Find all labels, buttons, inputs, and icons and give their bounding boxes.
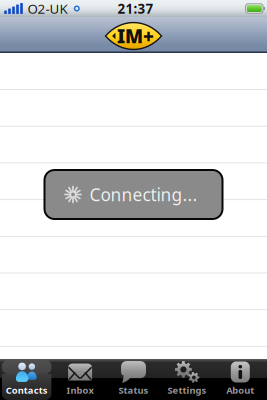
staticText: Connecting... xyxy=(89,183,197,206)
staticText: Status xyxy=(118,384,148,396)
staticText: Inbox xyxy=(67,384,94,396)
staticText: Contacts xyxy=(6,384,48,396)
button[interactable]: Status xyxy=(107,359,160,400)
staticText: 21:37 xyxy=(117,0,153,17)
button[interactable]: Settings xyxy=(160,359,214,400)
staticText: About xyxy=(226,384,254,396)
button[interactable]: Inbox xyxy=(53,359,107,400)
staticText: O2-UK xyxy=(27,0,67,17)
staticText: IM+ xyxy=(117,24,154,48)
button[interactable]: Contacts xyxy=(0,359,53,400)
button[interactable]: About xyxy=(214,359,267,400)
staticText: Settings xyxy=(167,384,206,396)
